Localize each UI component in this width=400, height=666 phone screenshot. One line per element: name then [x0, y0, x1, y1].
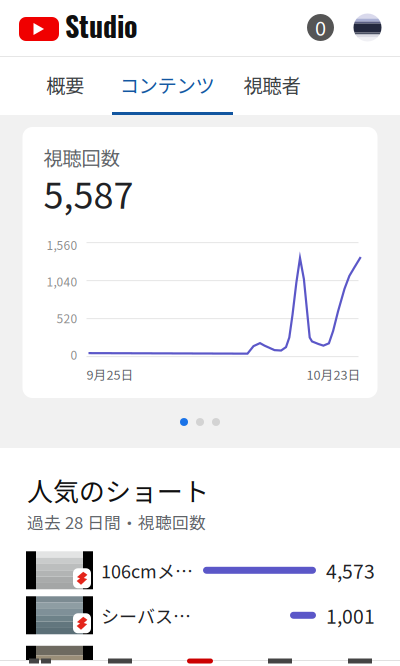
button[interactable]: シーバス… [0, 593, 400, 638]
button[interactable]: Comments [320, 661, 400, 666]
staticText: 1,560 [46, 236, 77, 253]
staticText: 106cmメ… [101, 557, 193, 583]
button[interactable]: Notifications [297, 1, 344, 54]
staticText: 520 [56, 309, 77, 327]
staticText: 4,573 [326, 556, 375, 584]
button[interactable]: Dashboard [0, 661, 80, 666]
staticText: 概要 [46, 70, 84, 98]
button[interactable]: 視聴者 [227, 57, 317, 115]
staticText: 10月23日 [306, 365, 360, 383]
staticText: 0 [315, 12, 326, 41]
staticText: 視聴回数 [43, 143, 119, 171]
button[interactable]: Studio [0, 0, 144, 56]
staticText: 人気のショート [27, 471, 209, 509]
button[interactable]: Content [80, 661, 160, 666]
staticText: 5,587 [43, 167, 133, 219]
button[interactable]: Account [344, 1, 400, 54]
staticText: シーバス… [101, 602, 191, 628]
button[interactable]: Create [160, 661, 240, 666]
button[interactable]: 106cmメ… [0, 548, 400, 593]
staticText: 1,001 [326, 601, 375, 629]
staticText: 0 [70, 346, 77, 363]
staticText: 過去 28 日間・視聴回数 [27, 510, 206, 534]
button[interactable]: 概要 [23, 57, 107, 115]
staticText: 視聴者 [243, 70, 300, 98]
staticText: 9月25日 [86, 365, 133, 383]
staticText: 1,040 [46, 273, 77, 290]
staticText: コンテンツ [119, 70, 214, 98]
button[interactable]: コンテンツ [107, 57, 227, 115]
button[interactable]: Analytics [240, 661, 320, 666]
staticText: Studio [65, 4, 138, 46]
